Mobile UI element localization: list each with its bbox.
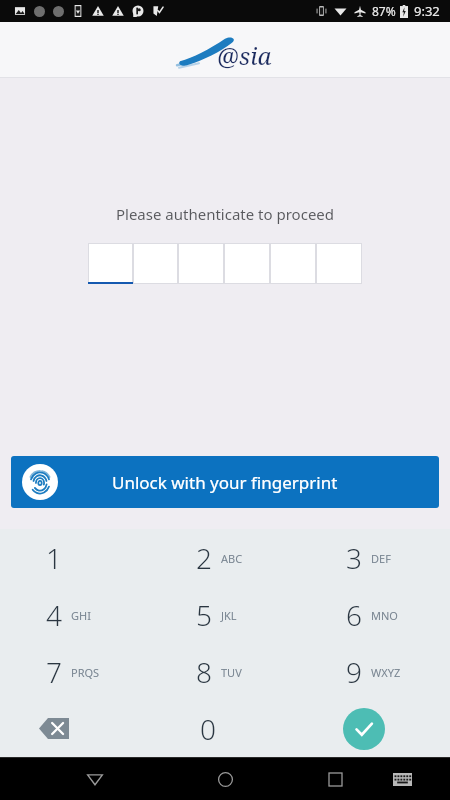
staticText: WXYZ bbox=[371, 665, 401, 680]
button[interactable]: Confirm bbox=[300, 700, 450, 757]
staticText: Unlock with your fingerprint bbox=[112, 471, 338, 494]
button[interactable]: 8 bbox=[150, 643, 300, 700]
staticText: 9 bbox=[346, 653, 362, 691]
staticText: MNO bbox=[371, 608, 398, 623]
button[interactable] bbox=[316, 243, 362, 284]
button[interactable]: Back bbox=[80, 764, 110, 794]
staticText: 87% bbox=[372, 3, 396, 19]
button[interactable] bbox=[88, 243, 133, 284]
staticText: Please authenticate to proceed bbox=[0, 204, 450, 224]
staticText: PRQS bbox=[71, 665, 100, 680]
staticText: 2 bbox=[196, 539, 212, 577]
staticText: JKL bbox=[221, 608, 237, 623]
staticText: 4 bbox=[46, 596, 62, 634]
button[interactable] bbox=[133, 243, 178, 284]
staticText: 9:32 bbox=[414, 2, 440, 20]
staticText: 6 bbox=[346, 596, 362, 634]
button[interactable] bbox=[270, 243, 316, 284]
staticText: TUV bbox=[221, 665, 242, 680]
button[interactable]: Keyboard bbox=[387, 764, 417, 794]
button[interactable]: 7 bbox=[0, 643, 150, 700]
staticText: 0 bbox=[200, 710, 216, 748]
button[interactable]: Backspace bbox=[0, 700, 150, 757]
button[interactable]: 6 bbox=[300, 586, 450, 643]
staticText: GHI bbox=[71, 608, 91, 623]
staticText: 7 bbox=[46, 653, 62, 691]
staticText: 5 bbox=[196, 596, 212, 634]
button[interactable]: 2 bbox=[150, 529, 300, 586]
button[interactable]: 4 bbox=[0, 586, 150, 643]
button[interactable]: Unlock with your fingerprint bbox=[11, 456, 439, 508]
staticText: ABC bbox=[221, 551, 243, 566]
button[interactable]: 5 bbox=[150, 586, 300, 643]
button[interactable]: 0 bbox=[150, 700, 300, 757]
button[interactable]: 3 bbox=[300, 529, 450, 586]
button[interactable] bbox=[224, 243, 270, 284]
staticText: 3 bbox=[346, 539, 362, 577]
staticText: 1 bbox=[46, 539, 62, 577]
staticText: @sia bbox=[217, 39, 272, 72]
button[interactable]: Home bbox=[210, 764, 240, 794]
button[interactable]: 9 bbox=[300, 643, 450, 700]
button[interactable]: Recent apps bbox=[320, 764, 350, 794]
button[interactable] bbox=[178, 243, 224, 284]
staticText: DEF bbox=[371, 551, 391, 566]
staticText: 8 bbox=[196, 653, 212, 691]
button[interactable]: 1 bbox=[0, 529, 150, 586]
